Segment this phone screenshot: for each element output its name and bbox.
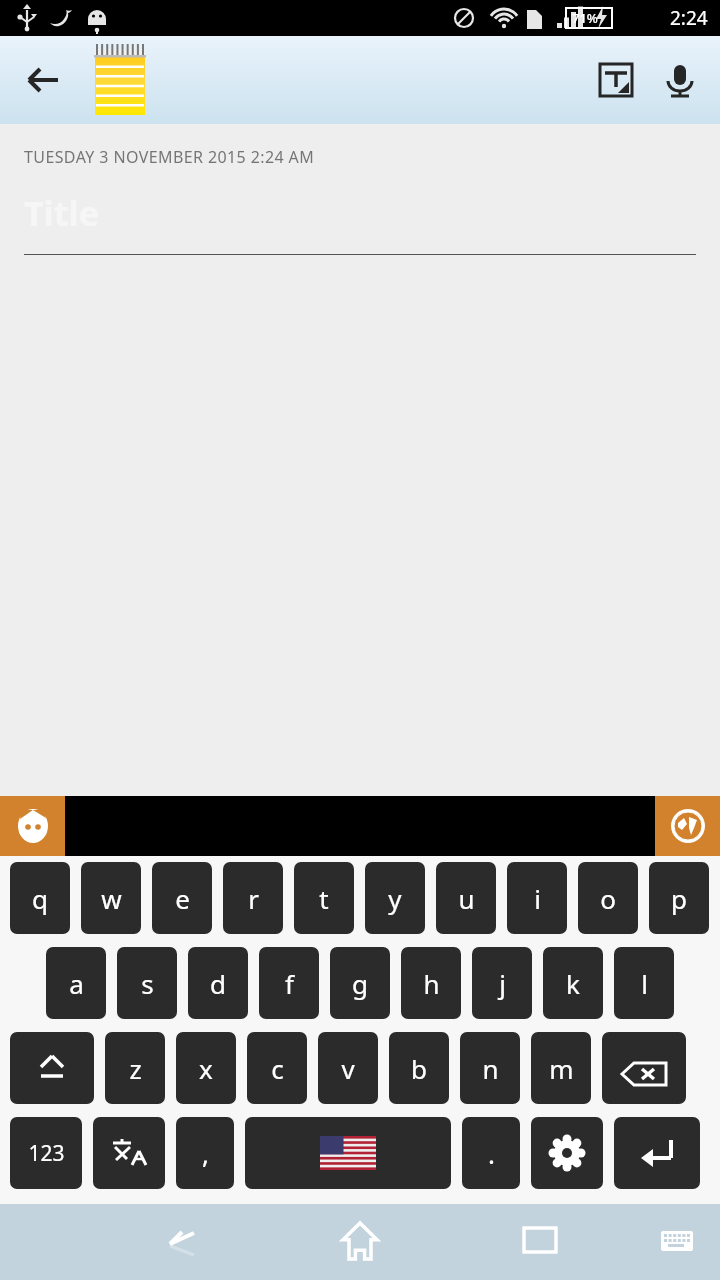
staticText: z (129, 1051, 142, 1086)
staticText: 2:24 (670, 5, 708, 31)
button[interactable]: i (507, 862, 567, 934)
button[interactable]: Settings (531, 1117, 603, 1189)
staticText: i (534, 881, 541, 916)
staticText: , (202, 1136, 209, 1171)
staticText: f (285, 966, 294, 1001)
staticText: m (549, 1051, 574, 1086)
staticText: o (600, 881, 616, 916)
button[interactable]: Shift (10, 1032, 94, 1104)
button[interactable]: 123 (10, 1117, 82, 1189)
staticText: h (423, 966, 440, 1001)
button[interactable]: f (259, 947, 319, 1019)
button[interactable]: t (294, 862, 354, 934)
staticText: x (199, 1051, 213, 1086)
button[interactable]: u (436, 862, 496, 934)
button[interactable]: Hide keyboard (648, 1213, 706, 1271)
staticText: n (482, 1051, 499, 1086)
button[interactable]: Recent apps (500, 1204, 580, 1280)
staticText: a (69, 966, 84, 1001)
button[interactable]: v (318, 1032, 378, 1104)
button[interactable]: h (401, 947, 461, 1019)
button[interactable]: g (330, 947, 390, 1019)
button[interactable]: s (117, 947, 177, 1019)
button[interactable]: Space (245, 1117, 451, 1189)
button[interactable]: y (365, 862, 425, 934)
staticText: . (488, 1136, 495, 1171)
staticText: c (271, 1051, 284, 1086)
button[interactable]: k (543, 947, 603, 1019)
button[interactable]: w (81, 862, 141, 934)
button[interactable]: n (460, 1032, 520, 1104)
staticText: b (411, 1051, 427, 1086)
button[interactable]: d (188, 947, 248, 1019)
button[interactable]: a (46, 947, 106, 1019)
staticText: w (101, 881, 122, 916)
button[interactable]: m (531, 1032, 591, 1104)
button[interactable]: Emoji (0, 796, 65, 856)
staticText: t (319, 881, 329, 916)
staticText: y (388, 881, 402, 916)
button[interactable]: q (10, 862, 70, 934)
staticText: v (341, 1051, 355, 1086)
button[interactable]: Home (315, 1204, 405, 1280)
button[interactable]: Text mode (584, 48, 648, 112)
button[interactable]: j (472, 947, 532, 1019)
staticText: s (141, 966, 154, 1001)
staticText: l (641, 966, 648, 1001)
staticText: 123 (28, 1139, 65, 1168)
button[interactable]: Delete (602, 1032, 686, 1104)
button[interactable]: b (389, 1032, 449, 1104)
staticText: j (499, 966, 506, 1001)
staticText: p (671, 881, 687, 916)
staticText: g (352, 966, 368, 1001)
button[interactable]: r (223, 862, 283, 934)
button[interactable]: Switch language (93, 1117, 165, 1189)
staticText: k (566, 966, 580, 1001)
staticText: u (458, 881, 475, 916)
button[interactable]: , (176, 1117, 234, 1189)
button[interactable]: . (462, 1117, 520, 1189)
button[interactable]: c (247, 1032, 307, 1104)
button[interactable]: x (176, 1032, 236, 1104)
button[interactable]: l (614, 947, 674, 1019)
button[interactable]: Back (140, 1204, 220, 1280)
staticText: d (210, 966, 226, 1001)
button[interactable]: Back (10, 48, 74, 112)
button[interactable]: p (649, 862, 709, 934)
button[interactable]: z (105, 1032, 165, 1104)
staticText: 71% (572, 9, 598, 27)
button[interactable]: e (152, 862, 212, 934)
button[interactable]: Enter (614, 1117, 700, 1189)
button[interactable]: o (578, 862, 638, 934)
staticText: Title (24, 190, 99, 236)
button[interactable]: Change language (655, 796, 720, 856)
staticText: r (248, 881, 259, 916)
staticText: q (32, 881, 48, 916)
staticText: e (175, 881, 190, 916)
staticText: TUESDAY 3 NOVEMBER 2015 2:24 AM (24, 146, 315, 168)
button[interactable]: Voice input (648, 48, 712, 112)
